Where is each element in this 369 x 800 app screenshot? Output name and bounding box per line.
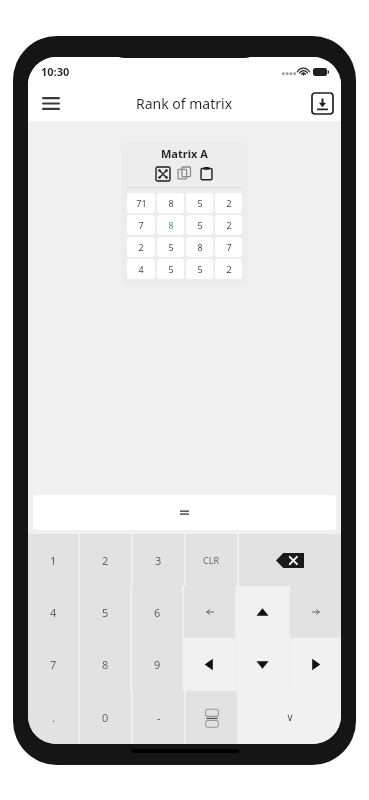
button[interactable]: 4 <box>28 586 78 638</box>
staticText: 1 <box>50 553 57 568</box>
button[interactable]: 2 <box>215 215 242 235</box>
staticText: 9 <box>154 657 161 672</box>
button[interactable]: 0 <box>80 691 131 744</box>
button[interactable]: Paste <box>199 166 214 181</box>
staticText: - <box>157 710 161 725</box>
staticText: 5 <box>168 263 174 275</box>
staticText: 4 <box>138 263 144 275</box>
button[interactable]: 7 <box>215 237 242 257</box>
button[interactable]: 5 <box>186 259 213 279</box>
staticText: 2 <box>226 197 232 209</box>
staticText: 2 <box>226 219 232 231</box>
button[interactable]: 8 <box>157 193 184 213</box>
button[interactable]: 8 <box>80 638 130 691</box>
button[interactable]: 6 <box>132 586 182 638</box>
button[interactable]: 5 <box>157 237 184 257</box>
button[interactable]: 4 <box>127 259 155 279</box>
staticText: 3 <box>155 553 162 568</box>
button[interactable]: Backspace <box>239 534 341 586</box>
staticText: 8 <box>168 197 174 209</box>
staticText: 2 <box>102 553 109 568</box>
staticText: 5 <box>168 241 174 253</box>
button[interactable]: 2 <box>80 534 131 586</box>
staticText: 2 <box>138 241 144 253</box>
button[interactable]: 7 <box>127 215 155 235</box>
button[interactable]: 1 <box>28 534 78 586</box>
staticText: 8 <box>197 241 203 253</box>
button[interactable]: Down <box>237 638 288 691</box>
button[interactable]: 8 <box>186 237 213 257</box>
staticText: 71 <box>136 197 147 209</box>
staticText: 5 <box>197 219 203 231</box>
button[interactable]: Up <box>237 586 288 638</box>
button[interactable]: Right <box>290 586 341 638</box>
button[interactable]: 5 <box>186 215 213 235</box>
button[interactable] <box>33 495 336 530</box>
button[interactable]: . <box>28 691 78 744</box>
staticText: 5 <box>102 605 109 620</box>
button[interactable]: 5 <box>157 259 184 279</box>
button[interactable]: ∨ <box>239 691 341 744</box>
staticText: 6 <box>154 605 161 620</box>
staticText: 7 <box>138 219 144 231</box>
button[interactable]: Resize <box>155 166 170 181</box>
staticText: . <box>52 710 55 725</box>
staticText: 5 <box>197 263 203 275</box>
staticText: 8 <box>168 219 174 231</box>
staticText: Matrix A <box>161 146 208 161</box>
button[interactable]: 5 <box>80 586 130 638</box>
staticText: 4 <box>50 605 57 620</box>
button[interactable]: Hide keyboard <box>186 691 237 744</box>
staticText: ∨ <box>286 711 295 724</box>
button[interactable]: 7 <box>28 638 78 691</box>
button[interactable]: 2 <box>127 237 155 257</box>
button[interactable]: 9 <box>132 638 182 691</box>
staticText: 0 <box>102 710 109 725</box>
button[interactable]: Move right <box>290 638 341 691</box>
button[interactable]: Move left <box>184 638 235 691</box>
staticText: 7 <box>226 241 232 253</box>
staticText: CLR <box>203 554 220 566</box>
button[interactable]: Copy <box>177 166 192 181</box>
staticText: 2 <box>226 263 232 275</box>
staticText: Rank of matrix <box>136 94 233 113</box>
staticText: 7 <box>50 657 57 672</box>
button[interactable]: 71 <box>127 193 155 213</box>
button[interactable]: 2 <box>215 259 242 279</box>
button[interactable]: 3 <box>133 534 184 586</box>
button[interactable]: 5 <box>186 193 213 213</box>
staticText: 8 <box>102 657 109 672</box>
button[interactable]: Left <box>184 586 235 638</box>
staticText: 5 <box>197 197 203 209</box>
button[interactable]: Menu <box>34 86 68 120</box>
staticText: 10:30 <box>41 64 70 79</box>
button[interactable]: Download <box>312 93 333 114</box>
button[interactable]: - <box>133 691 184 744</box>
button[interactable]: CLR <box>186 534 237 586</box>
button[interactable]: 2 <box>215 193 242 213</box>
button[interactable]: 8 <box>157 215 184 235</box>
